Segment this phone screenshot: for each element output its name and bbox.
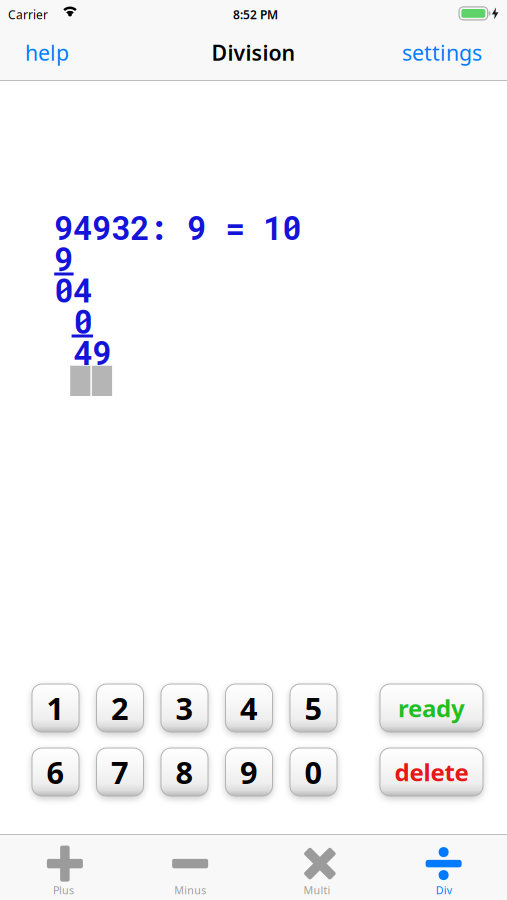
staticText: Plus — [53, 883, 74, 897]
staticText: 5 — [304, 688, 322, 728]
staticText: Division — [211, 38, 295, 67]
button[interactable]: 0 — [290, 748, 337, 796]
staticText: 1 — [46, 688, 64, 728]
button[interactable]: 8 — [161, 748, 208, 796]
staticText: delete — [394, 756, 468, 788]
staticText: 8 — [175, 752, 193, 792]
button[interactable]: delete — [380, 748, 483, 796]
button[interactable]: Div — [380, 835, 507, 900]
staticText: ready — [398, 692, 465, 724]
button[interactable]: 5 — [290, 684, 337, 732]
staticText: 9 — [54, 237, 73, 280]
staticText: 94932: 9 = 10 — [54, 206, 301, 249]
button[interactable]: 9 — [225, 748, 272, 796]
staticText: 8:52 PM — [233, 6, 278, 22]
staticText: 6 — [46, 752, 64, 792]
staticText: 0 — [304, 752, 322, 792]
staticText: Minus — [174, 883, 206, 897]
staticText: 2 — [111, 688, 129, 728]
staticText: 7 — [111, 752, 129, 792]
staticText: 4 — [240, 688, 258, 728]
button[interactable]: 7 — [96, 748, 143, 796]
button[interactable]: Plus — [0, 835, 127, 900]
staticText: 04 — [54, 269, 92, 311]
button[interactable]: 1 — [32, 684, 79, 732]
button[interactable]: 3 — [161, 684, 208, 732]
staticText: Carrier — [8, 6, 48, 22]
staticText: Div — [436, 883, 452, 897]
button[interactable]: ready — [380, 684, 483, 732]
button[interactable]: 6 — [32, 748, 79, 796]
button[interactable]: help — [25, 38, 69, 67]
staticText: 49 — [74, 331, 112, 374]
staticText: help — [25, 38, 69, 67]
staticText: Multi — [303, 883, 330, 897]
staticText: 3 — [175, 688, 193, 728]
staticText: 9 — [240, 752, 258, 792]
button[interactable]: Minus — [127, 835, 254, 900]
button[interactable]: 4 — [225, 684, 272, 732]
button[interactable]: Multi — [253, 835, 380, 900]
staticText: 0 — [74, 300, 93, 343]
staticText: settings — [402, 38, 482, 67]
button[interactable]: settings — [402, 38, 482, 67]
button[interactable]: 2 — [96, 684, 143, 732]
